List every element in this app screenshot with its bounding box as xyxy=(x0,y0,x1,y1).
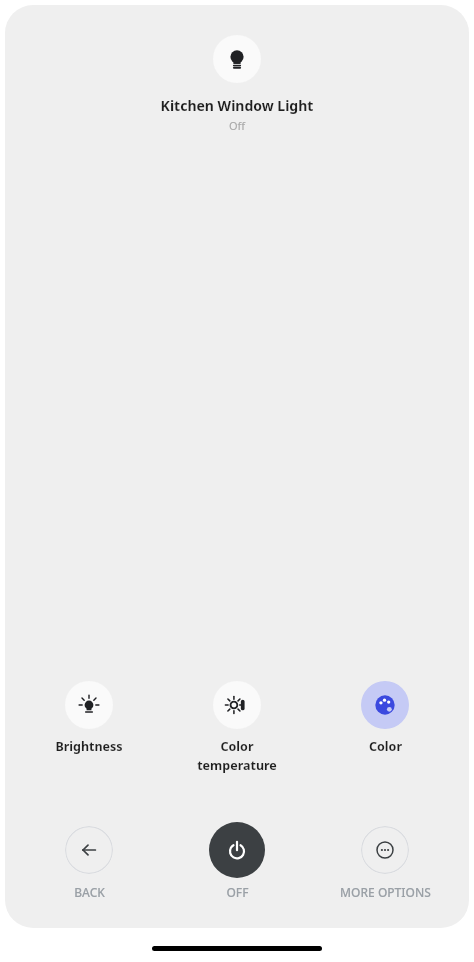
staticText: Kitchen Window Light xyxy=(5,96,469,115)
other: Brightness xyxy=(65,681,113,729)
other: Power off xyxy=(209,822,265,878)
button[interactable]: Back xyxy=(15,822,163,900)
other: Color xyxy=(361,681,409,729)
button[interactable]: Color xyxy=(311,681,459,755)
staticText: MORE OPTIONS xyxy=(340,884,431,900)
button[interactable]: Brightness xyxy=(15,681,163,755)
staticText: BACK xyxy=(74,884,105,900)
other: More options xyxy=(361,826,409,874)
staticText: Color xyxy=(369,738,402,755)
other: Color temperature xyxy=(213,681,261,729)
button[interactable]: Power off xyxy=(163,822,311,900)
button[interactable]: More options xyxy=(311,822,459,900)
staticText: Color temperature xyxy=(197,738,277,774)
staticText: OFF xyxy=(226,884,249,900)
button[interactable]: Light bulb xyxy=(213,35,261,83)
button[interactable]: Color temperature xyxy=(163,681,311,774)
other: Back xyxy=(65,826,113,874)
staticText: Off xyxy=(5,118,469,133)
staticText: Brightness xyxy=(55,738,123,755)
